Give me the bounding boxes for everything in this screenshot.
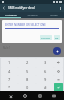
button[interactable]: Menu: [49, 91, 58, 100]
button[interactable]: OK: [54, 35, 60, 40]
staticText: 3: [44, 60, 47, 65]
button[interactable]: RULES: [43, 12, 64, 17]
button[interactable]: Add number: [53, 47, 61, 55]
staticText: OK: [55, 36, 59, 39]
button[interactable]: Navigate up: [0, 4, 8, 12]
button[interactable]: 2: [18, 58, 36, 67]
staticText: CANCEL: [41, 36, 51, 39]
button[interactable]: Hide keyboard: [6, 91, 15, 100]
button[interactable]: Recent apps: [35, 91, 44, 100]
staticText: SMS notifyer deal: [8, 6, 35, 10]
button[interactable]: Home: [20, 91, 29, 100]
button[interactable]: 1: [1, 58, 18, 67]
staticText: RULES: [50, 13, 58, 16]
button[interactable]: 6: [36, 67, 54, 75]
button[interactable]: *: [1, 83, 18, 91]
button[interactable]: 8: [18, 75, 36, 83]
staticText: NUMBERS: [5, 13, 17, 16]
button[interactable]: Symbols: [54, 67, 63, 75]
staticText: 7: [8, 77, 11, 82]
staticText: *: [8, 85, 11, 90]
button[interactable]: 9: [36, 75, 54, 83]
button[interactable]: 0: [18, 83, 36, 91]
button[interactable]: Backspace: [54, 58, 63, 67]
staticText: #: [44, 85, 47, 90]
staticText: 4: [8, 69, 11, 74]
button[interactable]: 4: [1, 67, 18, 75]
button[interactable]: 7: [1, 75, 18, 83]
button[interactable]: ACTIONS: [22, 12, 43, 17]
staticText: 9: [44, 77, 47, 82]
staticText: 6: [44, 69, 47, 74]
button[interactable]: Done: [54, 83, 63, 91]
button[interactable]: CANCEL: [40, 35, 52, 40]
button[interactable]: #: [36, 83, 54, 91]
staticText: ACTIONS: [27, 13, 38, 16]
button[interactable]: 5: [18, 67, 36, 75]
staticText: Rule 1: [3, 46, 11, 50]
staticText: 1: [8, 60, 11, 65]
staticText: 0: [26, 85, 29, 90]
staticText: 5: [26, 69, 29, 74]
staticText: 8: [26, 77, 29, 82]
button[interactable]: 3: [36, 58, 54, 67]
button[interactable]: More options: [56, 4, 64, 12]
staticText: 2: [26, 60, 29, 65]
staticText: ENTER NUMBER OR SELECT ONE: [5, 23, 46, 27]
button[interactable]: NUMBERS: [0, 12, 22, 17]
button[interactable]: Space: [54, 75, 63, 83]
